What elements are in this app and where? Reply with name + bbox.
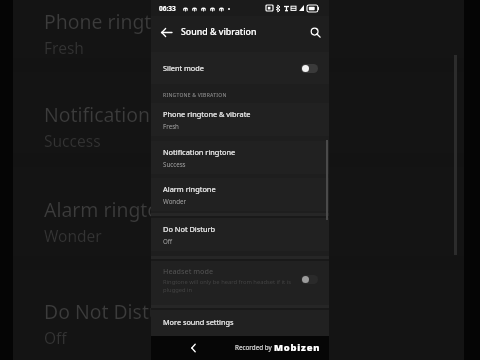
staticText: More sound settings xyxy=(163,317,234,327)
staticText: Notification ringtone xyxy=(163,147,236,157)
staticText: Phone ringto xyxy=(44,8,164,34)
staticText: Wonder xyxy=(44,225,102,246)
button[interactable]: Back xyxy=(184,338,204,358)
staticText: Notification xyxy=(44,101,151,127)
staticText: Fresh xyxy=(44,37,84,58)
button[interactable]: Phone ringtone & vibrate xyxy=(151,103,329,136)
staticText: Alarm ringto xyxy=(44,196,160,222)
button[interactable]: Do Not Disturb xyxy=(151,218,329,251)
staticText: Off xyxy=(44,327,67,348)
staticText: Fresh xyxy=(163,122,179,130)
staticText: Phone ringtone & vibrate xyxy=(163,109,251,119)
staticText: Sound & vibration xyxy=(181,26,257,38)
staticText: Headset mode xyxy=(163,266,214,276)
staticText: Recorded by xyxy=(235,343,274,352)
button[interactable]: Notification ringtone xyxy=(151,141,329,174)
staticText: Success xyxy=(44,130,101,151)
button[interactable]: Headset mode xyxy=(151,259,329,305)
staticText: RINGTONE & VIBRATION xyxy=(163,92,227,99)
staticText: Do Not Disturb xyxy=(163,224,216,234)
staticText: 06:33 xyxy=(159,4,176,13)
staticText: Ringtone will only be heard from headset… xyxy=(163,278,297,294)
staticText: Mobizen xyxy=(274,341,321,354)
button[interactable]: More sound settings xyxy=(151,308,329,336)
staticText: Do Not Distu xyxy=(44,298,161,324)
button[interactable]: Alarm ringtone xyxy=(151,178,329,211)
button[interactable]: Silent mode xyxy=(151,52,329,84)
staticText: Off xyxy=(163,237,173,245)
button[interactable]: Back xyxy=(154,20,178,44)
staticText: Success xyxy=(163,160,186,168)
staticText: Alarm ringtone xyxy=(163,184,216,194)
button[interactable]: Search xyxy=(305,22,325,42)
staticText: Silent mode xyxy=(163,63,204,73)
staticText: Wonder xyxy=(163,197,187,205)
